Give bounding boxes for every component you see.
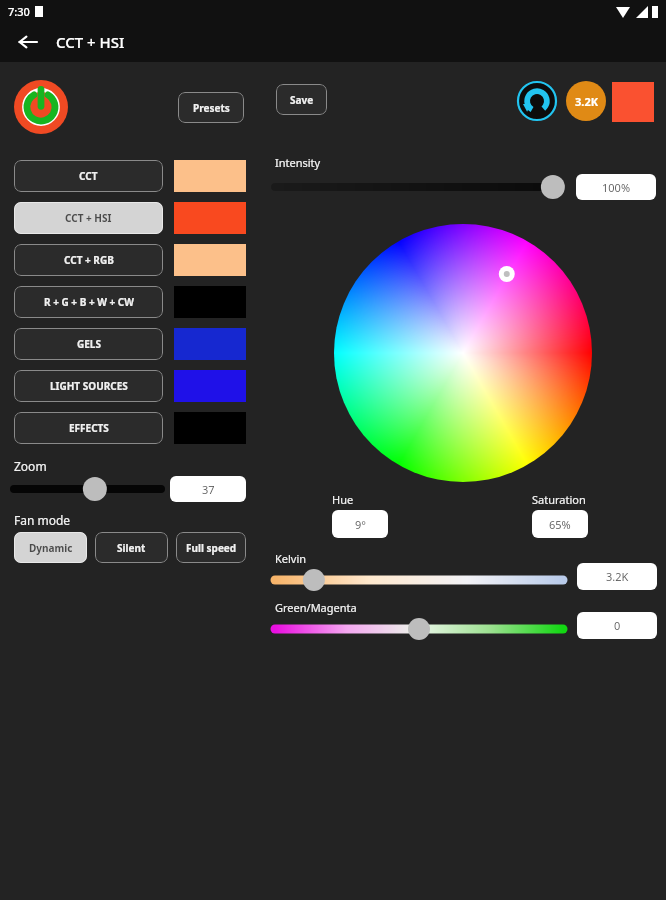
staticText: GELS <box>77 337 101 351</box>
staticText: 0 <box>614 618 621 633</box>
staticText: Intensity <box>275 155 321 170</box>
button[interactable]: R + G + B + W + CW <box>14 286 163 318</box>
button[interactable]: 3.2K <box>566 81 606 121</box>
staticText: LIGHT SOURCES <box>50 379 128 393</box>
button[interactable]: Colour wheel <box>334 224 592 482</box>
button[interactable]: Reset <box>518 82 556 120</box>
button[interactable] <box>275 176 560 198</box>
button[interactable]: Save <box>276 84 327 115</box>
button[interactable]: 65% <box>532 510 588 538</box>
staticText: R + G + B + W + CW <box>44 295 134 309</box>
button[interactable]: 0 <box>577 612 657 639</box>
staticText: 9° <box>355 517 366 532</box>
button[interactable]: 9° <box>332 510 388 538</box>
button[interactable]: Power <box>14 80 68 134</box>
button[interactable]: LIGHT SOURCES <box>14 370 163 402</box>
staticText: Presets <box>193 101 230 115</box>
staticText: 3.2K <box>575 94 598 109</box>
staticText: Full speed <box>186 541 237 555</box>
button[interactable]: Full speed <box>176 532 246 563</box>
button[interactable]: Presets <box>178 92 244 123</box>
staticText: Fan mode <box>14 512 71 528</box>
staticText: CCT + RGB <box>64 253 114 267</box>
staticText: CCT + HSI <box>56 32 125 52</box>
button[interactable] <box>275 618 563 640</box>
button[interactable]: CCT + HSI <box>14 202 163 234</box>
staticText: 3.2K <box>606 569 629 584</box>
staticText: Save <box>290 93 314 107</box>
staticText: Zoom <box>14 458 47 474</box>
staticText: CCT + HSI <box>65 211 112 225</box>
button[interactable]: GELS <box>14 328 163 360</box>
button[interactable]: Dynamic <box>14 532 87 563</box>
button[interactable] <box>14 477 161 501</box>
button[interactable]: 100% <box>576 174 656 200</box>
button[interactable]: Silent <box>95 532 168 563</box>
button[interactable]: 37 <box>170 476 246 502</box>
button[interactable]: CCT + RGB <box>14 244 163 276</box>
button[interactable]: 3.2K <box>577 563 657 590</box>
staticText: Saturation <box>532 492 586 507</box>
staticText: 37 <box>202 482 215 497</box>
staticText: 100% <box>602 180 631 195</box>
staticText: Green/Magenta <box>275 600 357 615</box>
button[interactable]: Back <box>0 22 56 62</box>
staticText: Hue <box>332 492 354 507</box>
button[interactable]: CCT <box>14 160 163 192</box>
staticText: 7:30 <box>8 4 30 19</box>
button[interactable] <box>275 569 563 591</box>
staticText: 65% <box>549 517 571 532</box>
staticText: Kelvin <box>275 551 307 566</box>
staticText: Dynamic <box>29 541 73 555</box>
button[interactable]: EFFECTS <box>14 412 163 444</box>
staticText: CCT <box>79 169 98 183</box>
staticText: EFFECTS <box>69 421 109 435</box>
staticText: Silent <box>117 541 146 555</box>
